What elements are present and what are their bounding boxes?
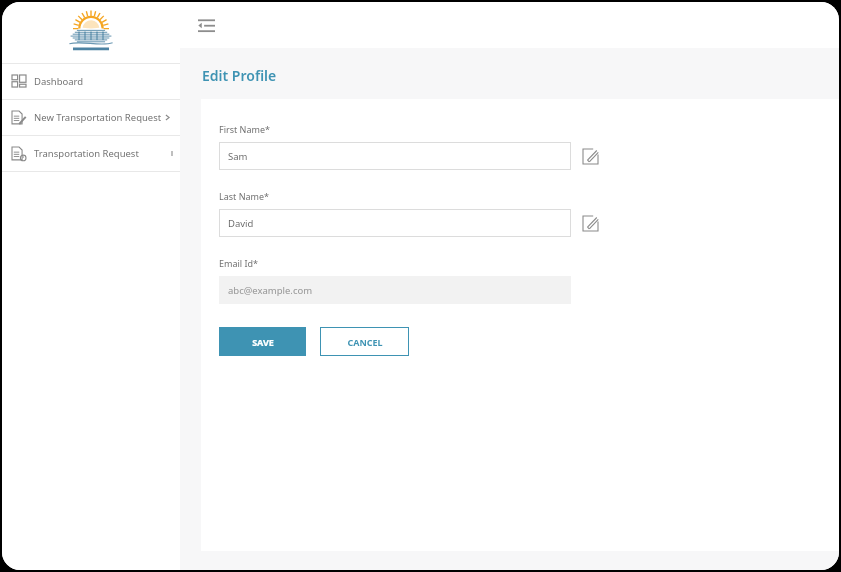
staticText: Dashboard (34, 75, 84, 88)
staticText: New Transportation Request (34, 111, 162, 124)
button[interactable]: Edit first name (582, 148, 599, 165)
button[interactable]: Toggle navigation menu (193, 12, 219, 38)
button[interactable]: Transportation Request History (2, 136, 180, 171)
other: Bahari Al Safina Group logo (61, 11, 121, 55)
button[interactable]: Dashboard (2, 64, 180, 99)
staticText: SAVE (252, 336, 274, 348)
staticText: Sam (228, 150, 248, 163)
staticText: Email Id* (219, 257, 258, 269)
button[interactable]: Edit last name (582, 215, 599, 232)
staticText: Edit Profile (202, 66, 277, 85)
staticText: Transportation Request History (34, 147, 172, 160)
button[interactable]: David (219, 209, 571, 237)
button[interactable]: abc@example.com (219, 276, 571, 304)
staticText: abc@example.com (228, 284, 313, 297)
button[interactable]: Sam (219, 142, 571, 170)
button[interactable]: New Transportation Request (2, 100, 180, 135)
staticText: David (228, 217, 254, 230)
staticText: CANCEL (347, 336, 383, 348)
button[interactable]: SAVE (219, 327, 306, 356)
staticText: Last Name* (219, 190, 270, 202)
staticText: First Name* (219, 123, 270, 135)
button[interactable]: CANCEL (320, 327, 409, 356)
